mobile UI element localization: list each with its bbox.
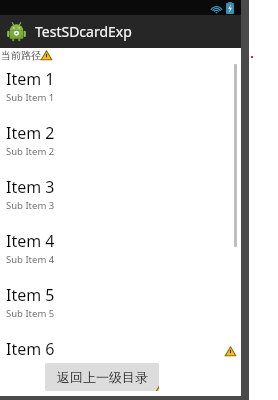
staticText: Item 6	[6, 338, 55, 357]
staticText: Item 4	[6, 230, 55, 252]
staticText: Sub Item 5	[6, 307, 55, 320]
staticText: Item 2	[6, 122, 55, 144]
staticText: Sub Item 4	[6, 253, 55, 266]
staticText: 当前路径	[1, 49, 41, 62]
staticText: Sub Item 1	[6, 91, 55, 104]
button[interactable]: Item 6	[0, 335, 241, 360]
staticText: Item 1	[6, 68, 55, 90]
button[interactable]: Item 4	[0, 227, 241, 269]
staticText: TestSDcardExp	[35, 22, 132, 41]
button[interactable]: Item 5	[0, 281, 241, 323]
button[interactable]: Item 1	[0, 65, 241, 107]
button[interactable]: 返回上一级目录	[45, 363, 159, 391]
staticText: 返回上一级目录	[57, 369, 148, 385]
button[interactable]: TestSDcardExp	[0, 15, 241, 48]
button[interactable]: Item 2	[0, 119, 241, 161]
button[interactable]: Item 3	[0, 173, 241, 215]
staticText: Sub Item 3	[6, 199, 55, 212]
staticText: Item 3	[6, 176, 55, 198]
staticText: Sub Item 2	[6, 145, 55, 158]
staticText: Item 5	[6, 284, 55, 306]
